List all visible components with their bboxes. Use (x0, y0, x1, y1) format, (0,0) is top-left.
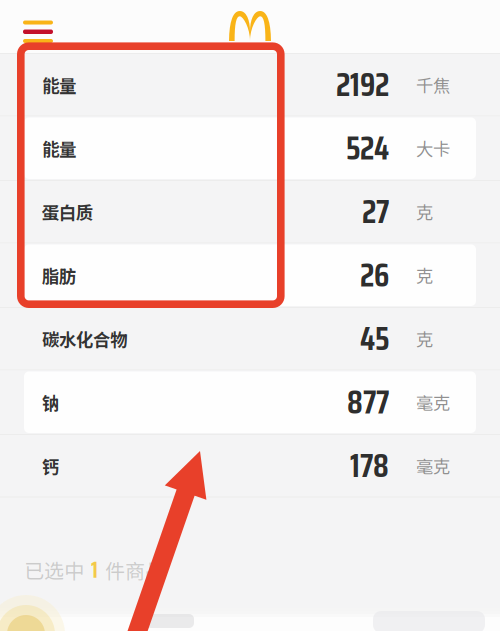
staticText: 2192 (336, 60, 389, 110)
staticText: 碳水化合物 (42, 326, 127, 351)
staticText: 能量 (42, 136, 76, 161)
button[interactable]: 蛋白质 (0, 180, 500, 243)
staticText: 能量 (42, 72, 76, 97)
staticText: 蛋白质 (42, 199, 93, 224)
staticText: 脂肪 (42, 263, 76, 288)
button[interactable]: 脂肪 (0, 243, 500, 307)
button[interactable]: 钠 (0, 370, 500, 434)
staticText: 钙 (42, 453, 59, 478)
staticText: 524 (346, 123, 389, 173)
staticText: 毫克 (416, 390, 450, 415)
staticText: 克 (416, 326, 433, 351)
staticText: 克 (416, 263, 433, 288)
staticText: 45 (360, 314, 389, 364)
button[interactable]: Menu (0, 0, 53, 43)
staticText: 大卡 (416, 136, 450, 161)
button[interactable]: 能量 (0, 53, 500, 116)
staticText: 27 (362, 187, 389, 237)
button[interactable]: 钙 (0, 434, 500, 497)
staticText: 26 (360, 250, 389, 300)
staticText: 千焦 (416, 72, 450, 97)
staticText: 件商品 (105, 555, 165, 584)
staticText: 毫克 (416, 453, 450, 478)
staticText: 178 (350, 441, 389, 491)
staticText: 钠 (42, 390, 59, 415)
staticText: 已选中 (24, 555, 84, 584)
staticText: 1 (91, 552, 98, 588)
staticText: 877 (347, 377, 389, 427)
staticText: 克 (416, 199, 433, 224)
button[interactable]: 碳水化合物 (0, 307, 500, 370)
button[interactable]: 能量 (0, 116, 500, 180)
